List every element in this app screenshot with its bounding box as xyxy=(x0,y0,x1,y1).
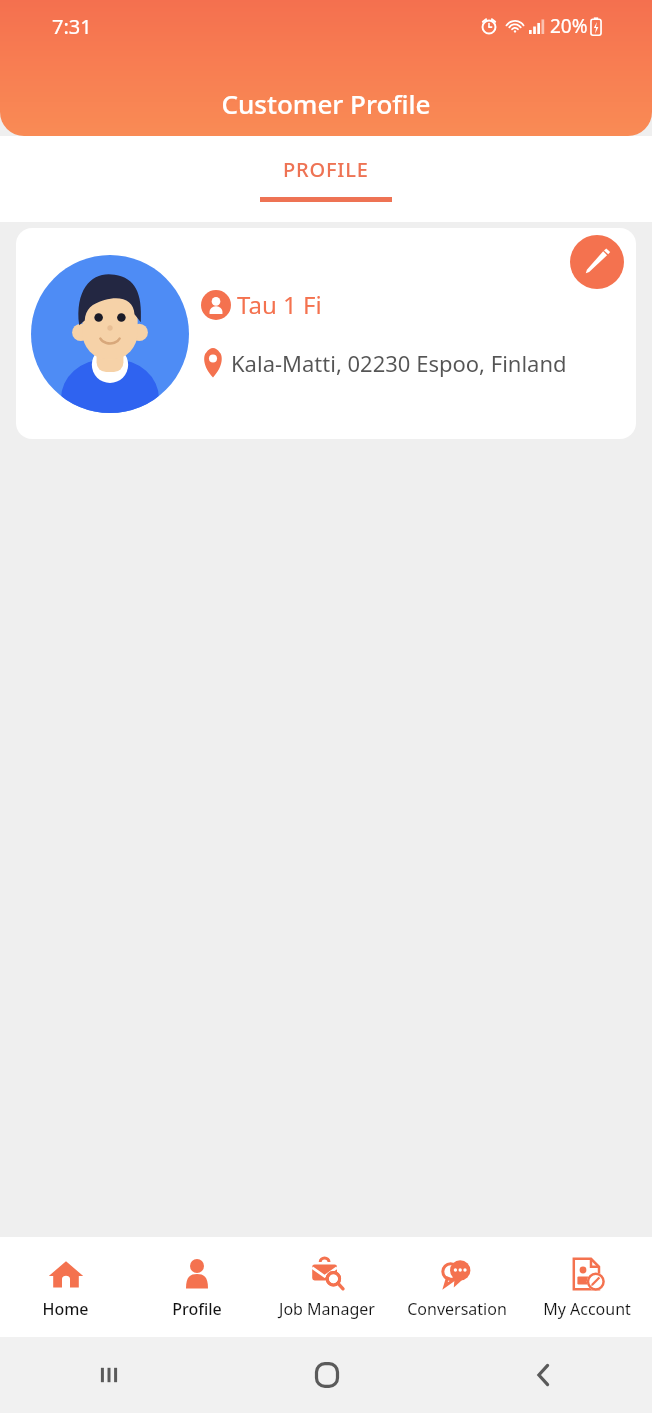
staticText: Kala-Matti, 02230 Espoo, Finland xyxy=(231,348,567,378)
staticText: Job Manager xyxy=(279,1298,375,1320)
staticText: Home xyxy=(42,1298,89,1320)
staticText: Tau 1 Fi xyxy=(237,288,322,321)
staticText: 20% xyxy=(550,13,588,39)
staticText: Profile xyxy=(172,1298,222,1320)
button[interactable]: Job Manager xyxy=(262,1237,392,1337)
button[interactable]: Home xyxy=(0,1237,131,1337)
button[interactable]: My Account xyxy=(522,1237,652,1337)
button[interactable]: PROFILE xyxy=(260,156,392,202)
staticText: PROFILE xyxy=(283,156,369,183)
staticText: Conversation xyxy=(407,1298,507,1320)
staticText: My Account xyxy=(543,1298,631,1320)
staticText: 7:31 xyxy=(52,13,92,40)
button[interactable]: Profile xyxy=(131,1237,262,1337)
button[interactable]: Edit profile xyxy=(570,235,624,289)
button[interactable]: Tau 1 Fi xyxy=(16,228,636,439)
staticText: Customer Profile xyxy=(221,86,431,121)
button[interactable]: Conversation xyxy=(392,1237,522,1337)
